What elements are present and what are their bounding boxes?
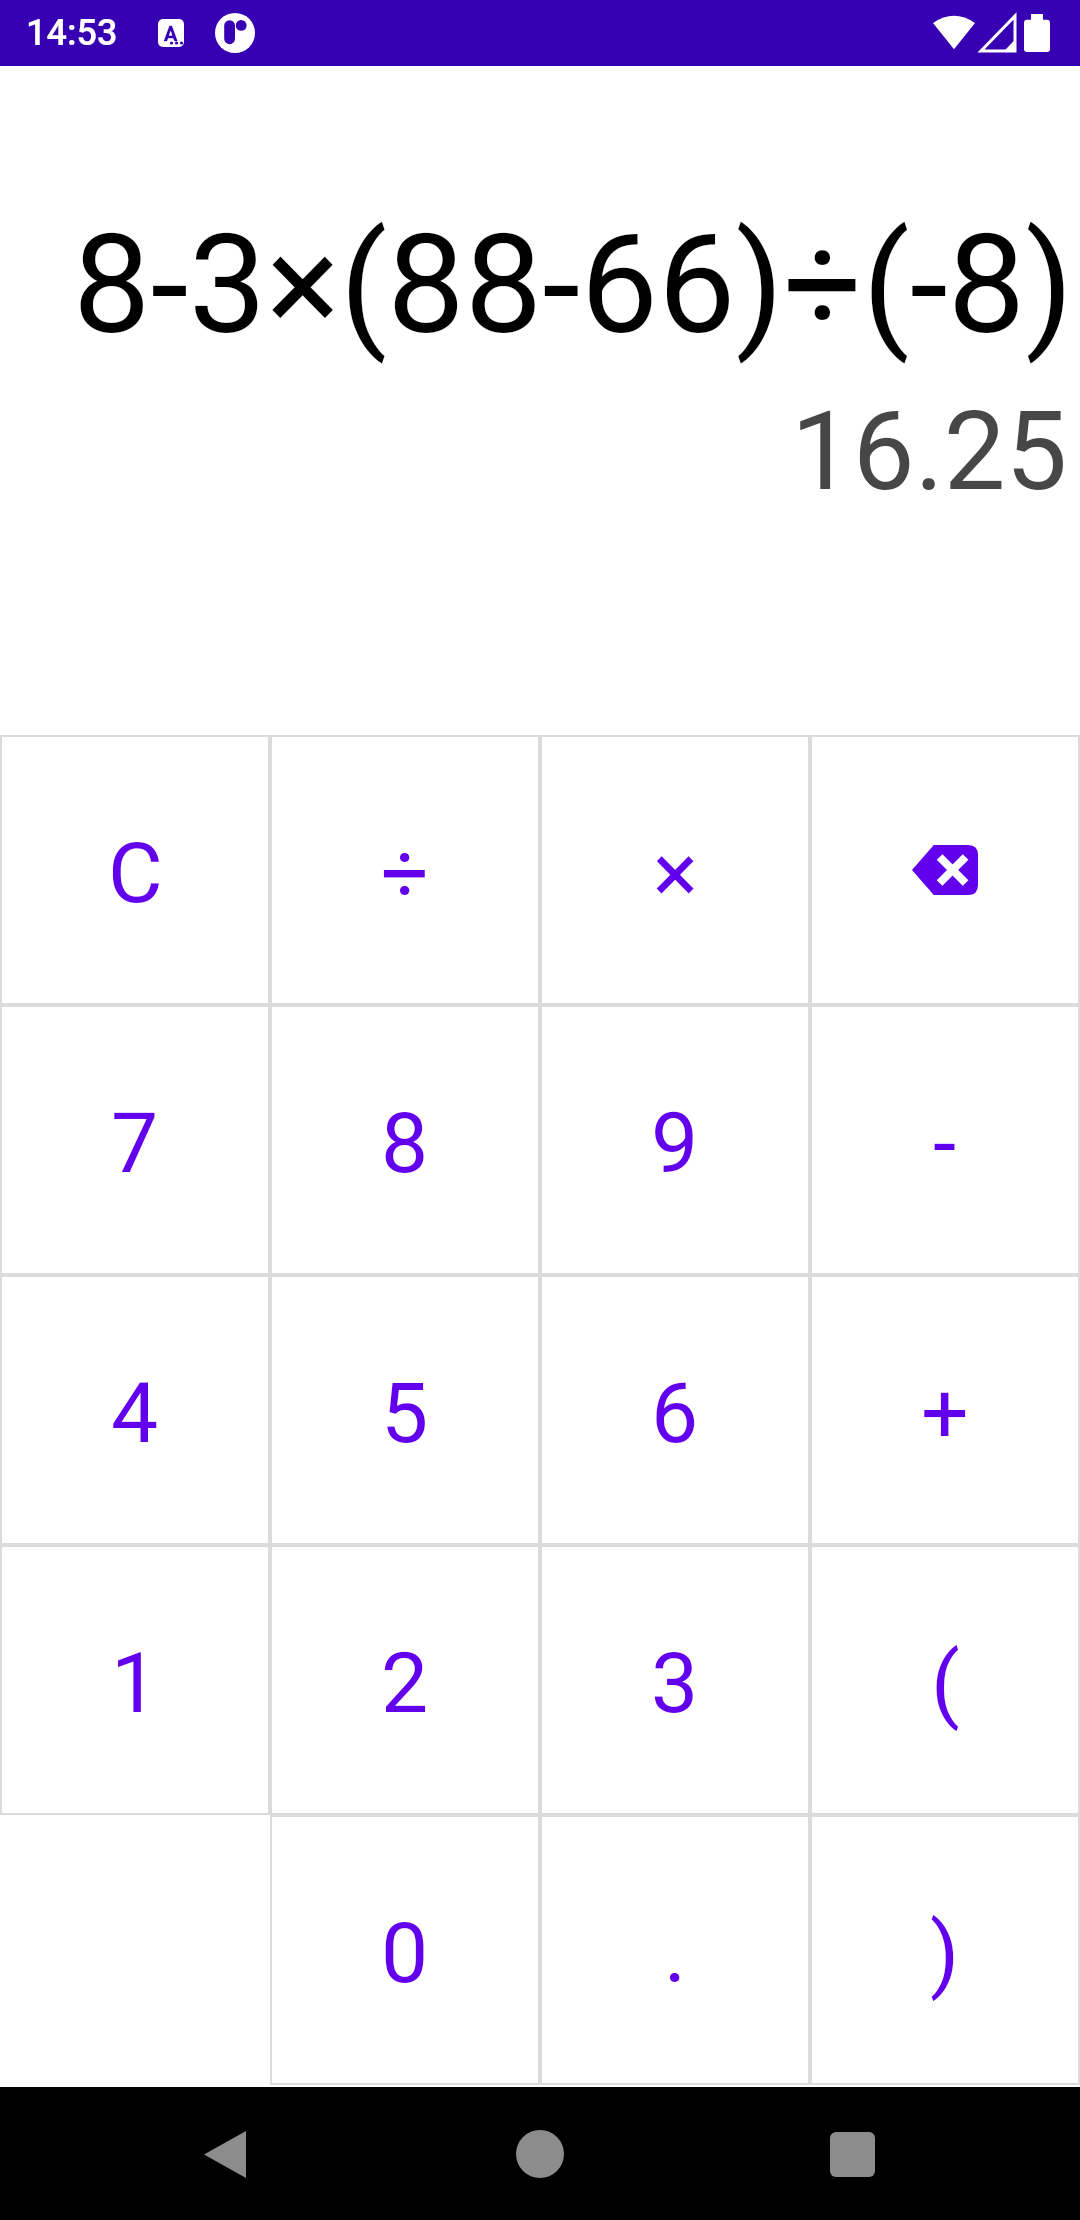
staticText: 14:53 xyxy=(26,12,118,54)
button[interactable]: 8 xyxy=(270,1005,540,1275)
staticText: 1 xyxy=(111,1634,159,1732)
button[interactable]: 7 xyxy=(0,1005,270,1275)
button[interactable]: . xyxy=(540,1815,810,2085)
button[interactable]: ) xyxy=(810,1815,1080,2085)
button[interactable]: ÷ xyxy=(270,735,540,1005)
staticText: 0 xyxy=(381,1904,429,2002)
staticText: 6 xyxy=(651,1364,699,1462)
staticText: 3 xyxy=(651,1634,699,1732)
button[interactable] xyxy=(507,2121,573,2187)
staticText: 8 xyxy=(381,1094,429,1192)
staticText: 8-3×(88-66)÷(-8) xyxy=(73,204,1074,366)
button[interactable]: 3 xyxy=(540,1545,810,1815)
button[interactable]: 6 xyxy=(540,1275,810,1545)
button[interactable]: 1 xyxy=(0,1545,270,1815)
staticText: C xyxy=(108,824,163,922)
button[interactable]: 4 xyxy=(0,1275,270,1545)
button[interactable]: 5 xyxy=(270,1275,540,1545)
button[interactable]: - xyxy=(810,1005,1080,1275)
staticText: A xyxy=(164,22,178,45)
button[interactable]: ( xyxy=(810,1545,1080,1815)
button[interactable]: 2 xyxy=(270,1545,540,1815)
staticText: ) xyxy=(930,1904,960,2002)
staticText: - xyxy=(933,1094,957,1192)
button[interactable]: 9 xyxy=(540,1005,810,1275)
staticText: 16.25 xyxy=(791,387,1068,516)
button[interactable] xyxy=(192,2121,258,2187)
button[interactable]: 0 xyxy=(270,1815,540,2085)
staticText: . xyxy=(664,1904,687,2002)
staticText: 4 xyxy=(111,1364,159,1462)
staticText: 9 xyxy=(651,1094,699,1192)
staticText: ( xyxy=(931,1634,960,1732)
staticText: 7 xyxy=(111,1094,159,1192)
button[interactable] xyxy=(810,735,1080,1005)
staticText: ÷ xyxy=(381,824,429,922)
button[interactable]: × xyxy=(540,735,810,1005)
button[interactable]: + xyxy=(810,1275,1080,1545)
staticText: 5 xyxy=(381,1364,429,1462)
staticText: × xyxy=(653,824,698,922)
button[interactable] xyxy=(819,2121,885,2187)
staticText: + xyxy=(921,1364,969,1462)
button[interactable]: C xyxy=(0,735,270,1005)
staticText: 2 xyxy=(381,1634,429,1732)
